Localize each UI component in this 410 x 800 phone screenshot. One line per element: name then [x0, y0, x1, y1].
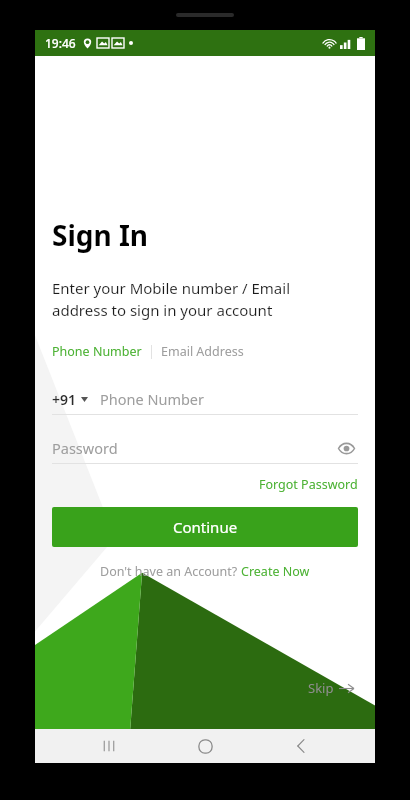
button[interactable]: Home [183, 729, 227, 763]
staticText: Continue [173, 517, 238, 537]
button[interactable]: Recents [87, 729, 131, 763]
button[interactable]: Show password [334, 436, 358, 460]
button[interactable]: Forgot Password [259, 476, 358, 493]
staticText: Skip [308, 679, 334, 697]
staticText: Create Now [241, 563, 310, 580]
staticText: Sign In [52, 216, 149, 254]
button[interactable]: +91 [52, 390, 88, 409]
staticText: Phone Number [100, 389, 205, 409]
button[interactable]: Phone Number [52, 343, 142, 360]
staticText: +91 [52, 390, 77, 409]
staticText: Enter your Mobile number / Email address… [52, 278, 291, 321]
staticText: Password [52, 438, 334, 458]
staticText: 19:46 [45, 35, 76, 51]
button[interactable]: Create Now [241, 563, 310, 580]
staticText: Phone Number [52, 343, 142, 360]
button[interactable]: Email Address [161, 343, 244, 360]
staticText: Forgot Password [259, 476, 358, 493]
button[interactable]: Skip [304, 675, 358, 701]
button[interactable]: Continue [52, 507, 358, 547]
staticText: Don't have an Account? [100, 563, 241, 580]
staticText: Email Address [161, 343, 244, 360]
button[interactable]: Back [279, 729, 323, 763]
